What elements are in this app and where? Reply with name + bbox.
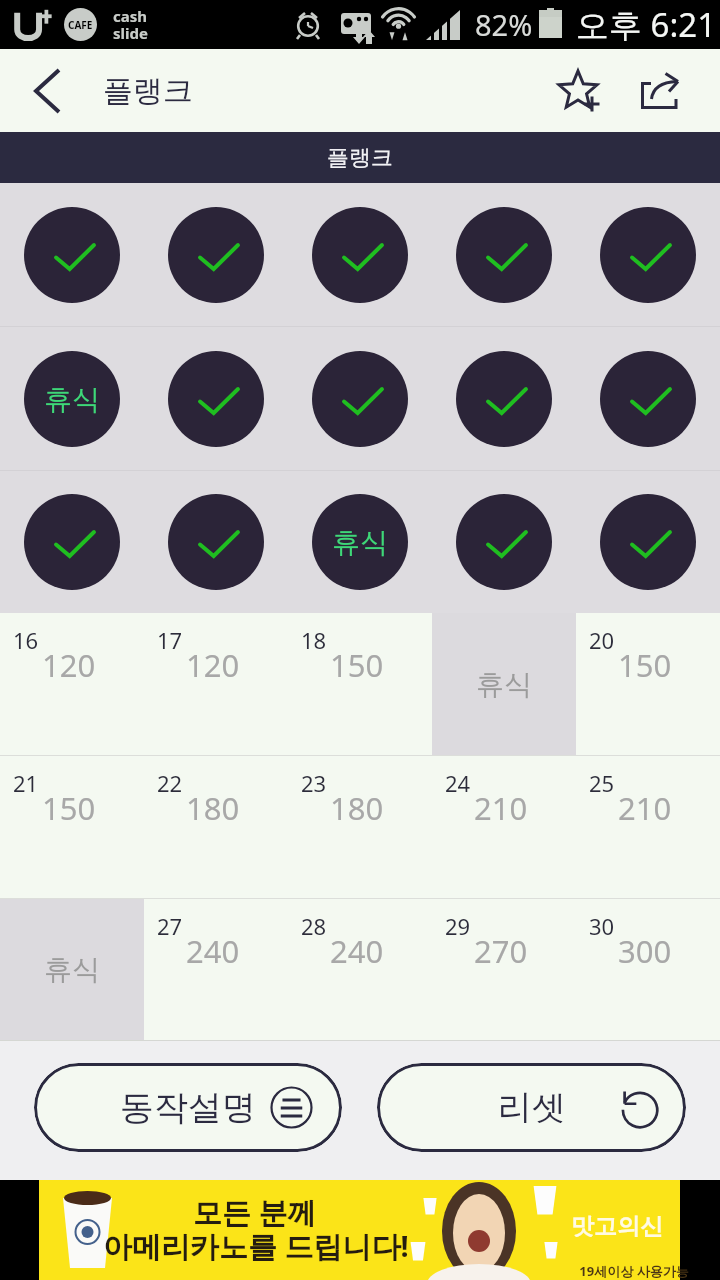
button[interactable]: Share — [620, 49, 700, 132]
staticText: 150 — [330, 644, 384, 686]
button[interactable]: 22 — [144, 756, 288, 898]
button[interactable]: Advertisement — [39, 1180, 680, 1280]
button[interactable]: 24 — [432, 756, 576, 898]
button[interactable]: 27 — [144, 899, 288, 1040]
staticText: 30 — [589, 911, 615, 941]
staticText: 180 — [186, 787, 240, 829]
button[interactable]: 휴식 — [0, 899, 144, 1040]
button[interactable]: 20 — [576, 613, 720, 755]
button[interactable]: Completed day — [312, 351, 408, 447]
staticText: 29 — [445, 911, 471, 941]
button[interactable]: Completed day — [456, 351, 552, 447]
staticText: 240 — [330, 930, 384, 972]
staticText: 16 — [13, 625, 39, 655]
staticText: 플랭크 — [327, 144, 393, 172]
staticText: 18 — [301, 625, 327, 655]
staticText: 210 — [474, 787, 528, 829]
staticText: 플랭크 — [103, 72, 193, 110]
button[interactable]: 16 — [0, 613, 144, 755]
button[interactable]: Back — [0, 49, 94, 132]
staticText: 22 — [157, 768, 183, 798]
staticText: 24 — [445, 768, 471, 798]
button[interactable]: Rest day — [312, 494, 408, 590]
staticText: 27 — [157, 911, 183, 941]
button[interactable]: Rest day — [24, 351, 120, 447]
staticText: 20 — [589, 625, 615, 655]
staticText: 모든 분께 — [193, 1192, 317, 1232]
staticText: 19세이상 사용가능 — [579, 1262, 689, 1280]
staticText: 리셋 — [498, 1086, 566, 1129]
staticText: 240 — [186, 930, 240, 972]
button[interactable]: Completed day — [456, 207, 552, 303]
button[interactable]: 30 — [576, 899, 720, 1040]
button[interactable]: Completed day — [312, 207, 408, 303]
staticText: 150 — [42, 787, 96, 829]
button[interactable]: Show exercise description — [34, 1063, 342, 1152]
button[interactable]: Completed day — [600, 494, 696, 590]
button[interactable]: Completed day — [168, 351, 264, 447]
button[interactable]: 29 — [432, 899, 576, 1040]
staticText: 300 — [618, 930, 672, 972]
button[interactable]: Completed day — [600, 207, 696, 303]
staticText: 맛고의신 — [571, 1212, 663, 1241]
button[interactable]: 25 — [576, 756, 720, 898]
staticText: 150 — [618, 644, 672, 686]
staticText: 210 — [618, 787, 672, 829]
staticText: 23 — [301, 768, 327, 798]
staticText: 270 — [474, 930, 528, 972]
staticText: 25 — [589, 768, 615, 798]
staticText: 180 — [330, 787, 384, 829]
staticText: 120 — [42, 644, 96, 686]
button[interactable]: 28 — [288, 899, 432, 1040]
button[interactable]: 18 — [288, 613, 432, 755]
button[interactable]: 휴식 — [432, 613, 576, 755]
button[interactable]: Completed day — [168, 207, 264, 303]
staticText: 휴식 — [44, 382, 100, 417]
staticText: 17 — [157, 625, 183, 655]
staticText: 120 — [186, 644, 240, 686]
button[interactable]: Completed day — [168, 494, 264, 590]
staticText: 동작설명 — [120, 1086, 256, 1129]
button[interactable]: Add to favorites — [542, 49, 620, 132]
button[interactable]: Completed day — [600, 351, 696, 447]
button[interactable]: Completed day — [24, 207, 120, 303]
staticText: 21 — [13, 768, 39, 798]
staticText: 오후 6:21 — [576, 2, 717, 47]
staticText: 휴식 — [44, 952, 100, 987]
staticText: cash slide — [113, 6, 148, 44]
staticText: 휴식 — [476, 667, 532, 702]
staticText: 휴식 — [332, 525, 388, 560]
button[interactable]: Completed day — [456, 494, 552, 590]
staticText: 28 — [301, 911, 327, 941]
button[interactable]: 23 — [288, 756, 432, 898]
button[interactable]: Reset — [377, 1063, 686, 1152]
staticText: 82% — [475, 5, 533, 44]
button[interactable]: 17 — [144, 613, 288, 755]
button[interactable]: 21 — [0, 756, 144, 898]
button[interactable]: Completed day — [24, 494, 120, 590]
staticText: CAFE — [68, 18, 93, 32]
staticText: 아메리카노를 드립니다! — [103, 1226, 409, 1266]
